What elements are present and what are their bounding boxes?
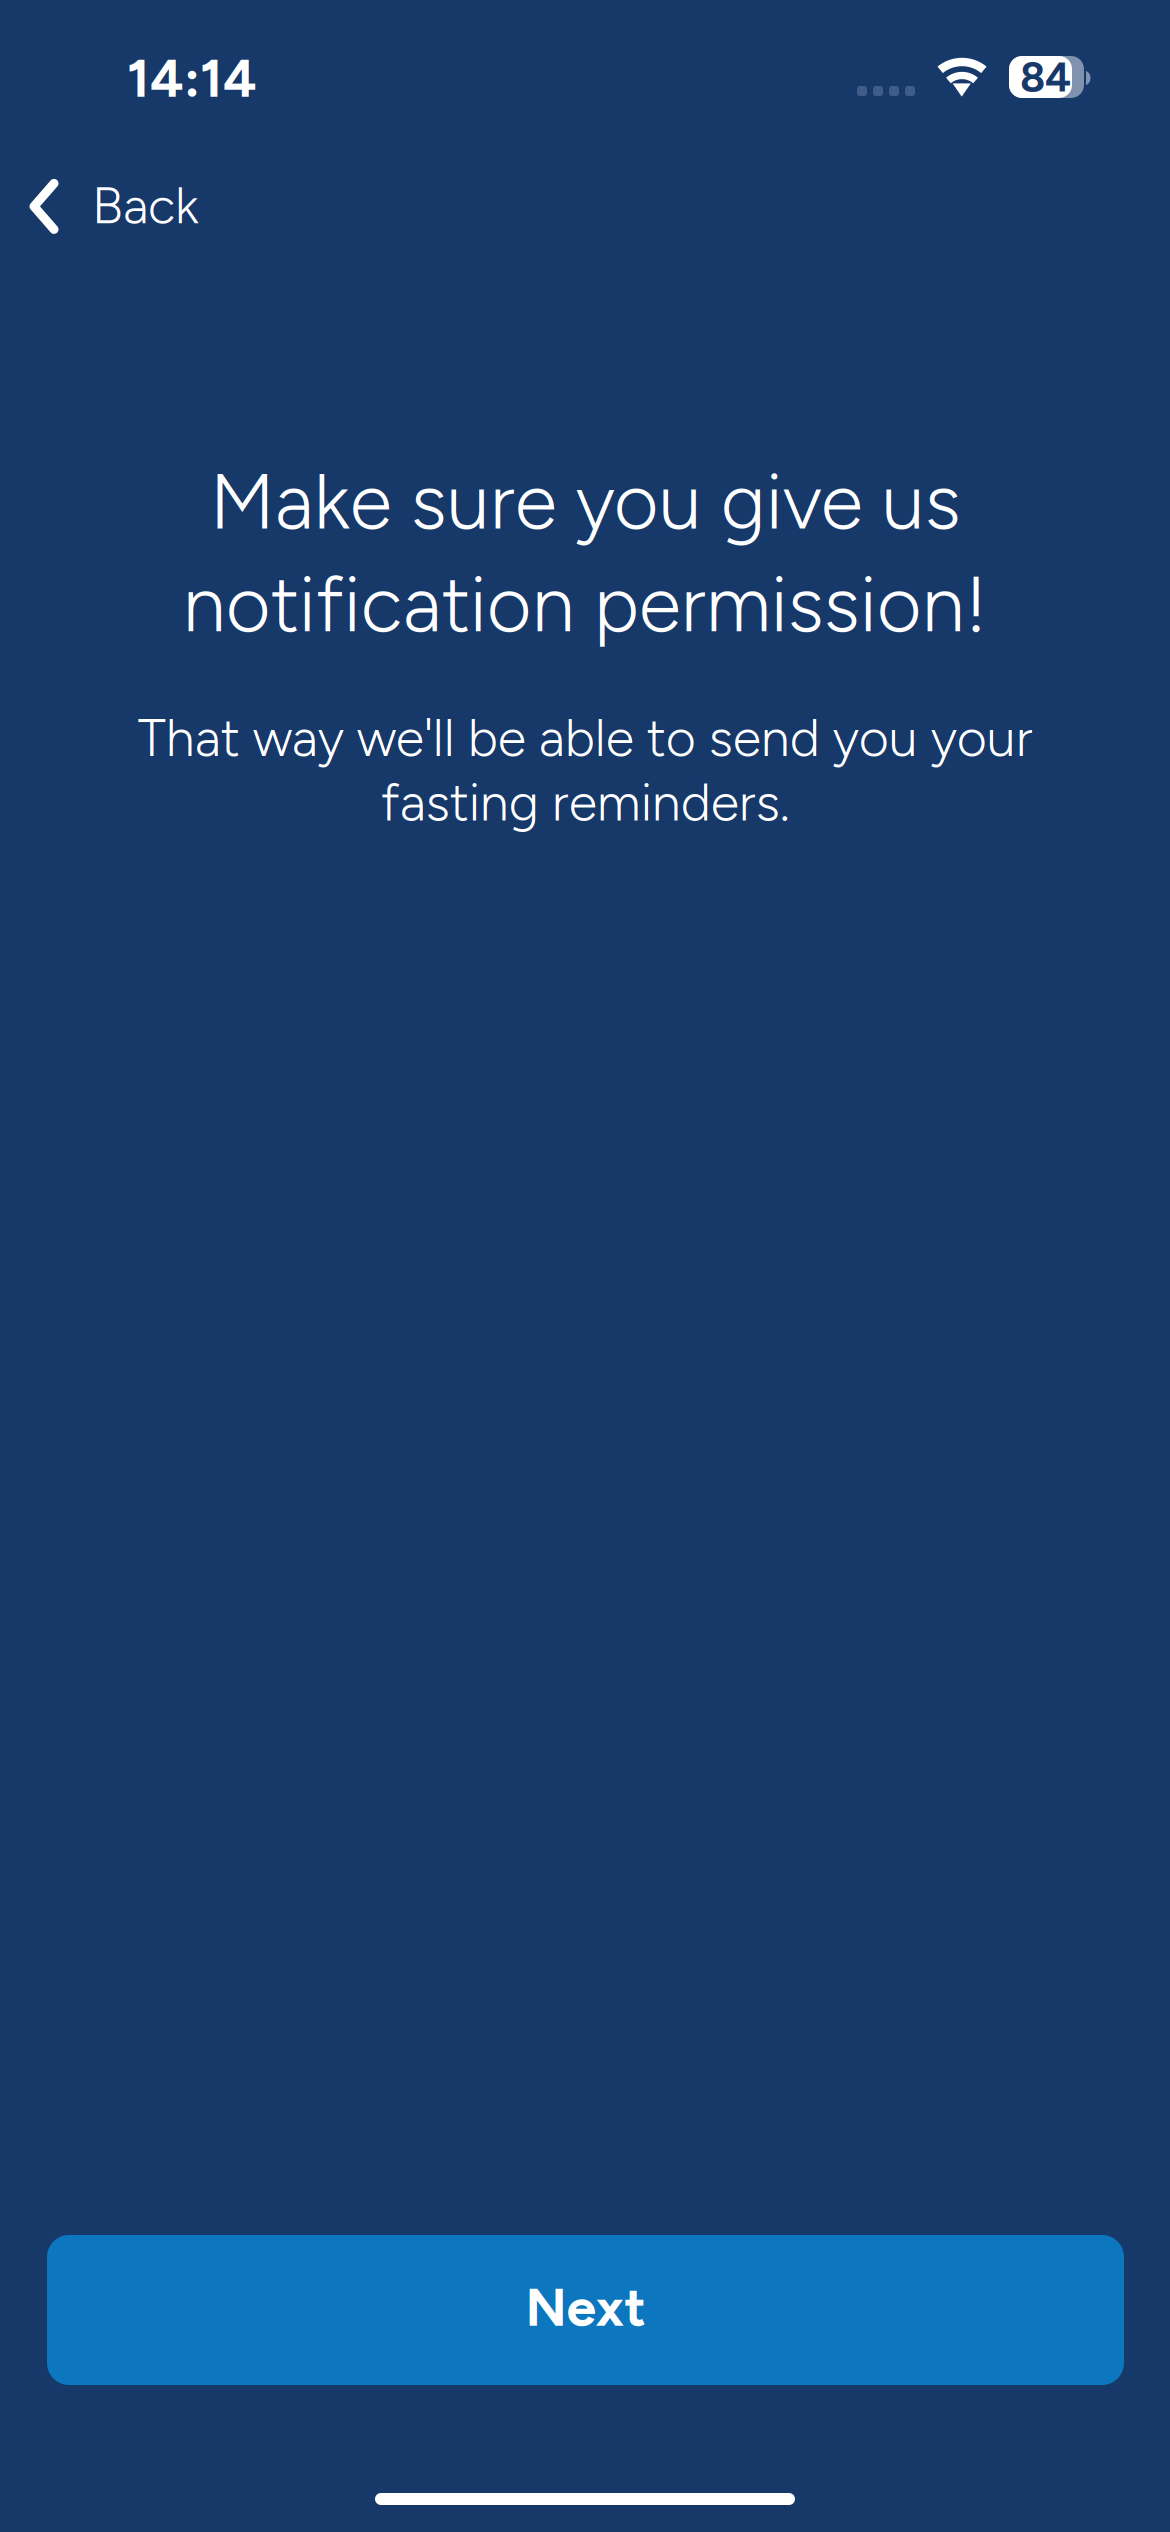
- staticText: Back: [92, 175, 199, 236]
- staticText: 14:14: [127, 46, 257, 110]
- button[interactable]: Back: [0, 151, 229, 260]
- staticText: 84: [1020, 52, 1071, 102]
- staticText: Make sure you give us notification permi…: [182, 455, 987, 651]
- staticText: Next: [525, 2275, 645, 2339]
- staticText: That way we'll be able to send you your …: [137, 707, 1032, 833]
- button[interactable]: Next: [47, 2235, 1124, 2385]
